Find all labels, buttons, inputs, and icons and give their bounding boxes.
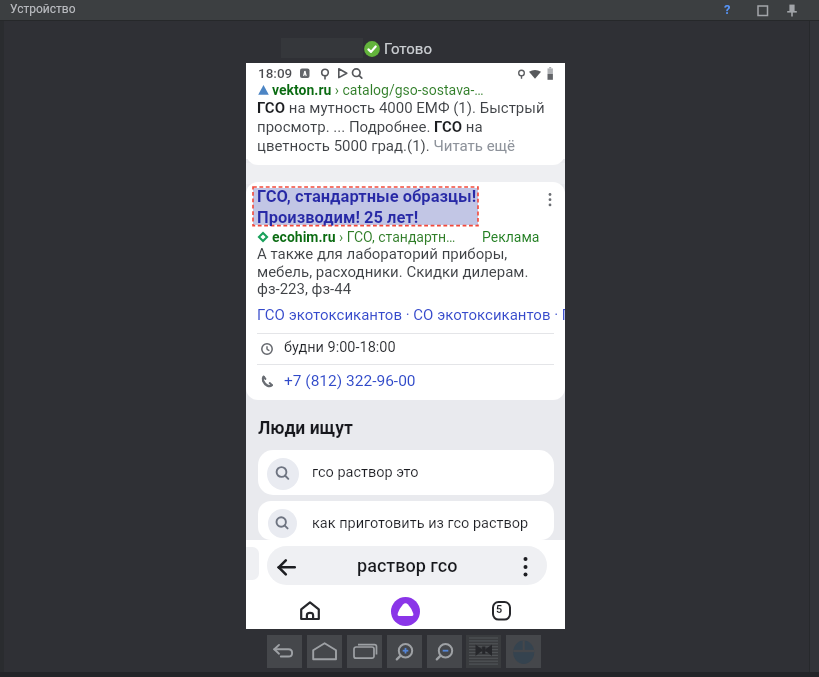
button[interactable]	[267, 635, 302, 668]
button[interactable]	[387, 635, 422, 668]
staticText: мебель, расходники. Скидки дилерам.	[257, 263, 529, 281]
button[interactable]	[506, 635, 541, 668]
staticText: А также для лабораторий приборы,	[257, 245, 508, 263]
staticText: Устройство	[10, 2, 76, 16]
staticText: Готово	[384, 40, 432, 58]
staticText: ?	[724, 2, 731, 17]
staticText: просмотр. ... Подробнее. ГСО на	[257, 118, 483, 136]
staticText: фз-223, фз-44	[257, 280, 352, 298]
staticText: vekton.ru › catalog/gso-sostava-…	[272, 82, 484, 98]
button[interactable]	[466, 635, 501, 668]
button[interactable]: +7 (812) 322-96-00	[246, 63, 378, 81]
button[interactable]	[246, 182, 565, 400]
staticText: гсо раствор это	[312, 464, 419, 481]
staticText: Производим! 25 лет!	[257, 208, 419, 227]
button[interactable]	[427, 635, 462, 668]
staticText: как приготовить из гсо раствор	[312, 515, 529, 532]
button[interactable]	[386, 592, 425, 629]
button[interactable]	[307, 635, 342, 668]
button[interactable]: раствор гсо	[267, 546, 547, 585]
staticText: ГСО на мутность 4000 ЕМФ (1). Быстрый	[257, 99, 545, 117]
button[interactable]: ГСО экотоксикантов · СО экотоксикантов ·…	[246, 63, 565, 81]
button[interactable]	[258, 450, 554, 495]
button[interactable]	[290, 593, 330, 629]
staticText: Реклама	[482, 229, 540, 245]
staticText: 18:09	[258, 65, 293, 81]
staticText: 5	[496, 603, 503, 616]
staticText: будни 9:00-18:00	[284, 339, 396, 356]
staticText: ГСО, стандартные образцы!	[257, 187, 477, 206]
button[interactable]	[258, 501, 554, 540]
staticText: раствор гсо	[357, 555, 458, 576]
button[interactable]	[347, 635, 382, 668]
staticText: Люди ищут	[258, 418, 354, 439]
staticText: ecohim.ru › ГСО, стандартн…	[272, 229, 456, 245]
staticText: цветность 5000 град.(1). Читать ещё	[257, 137, 516, 155]
button[interactable]: 5	[484, 593, 520, 629]
